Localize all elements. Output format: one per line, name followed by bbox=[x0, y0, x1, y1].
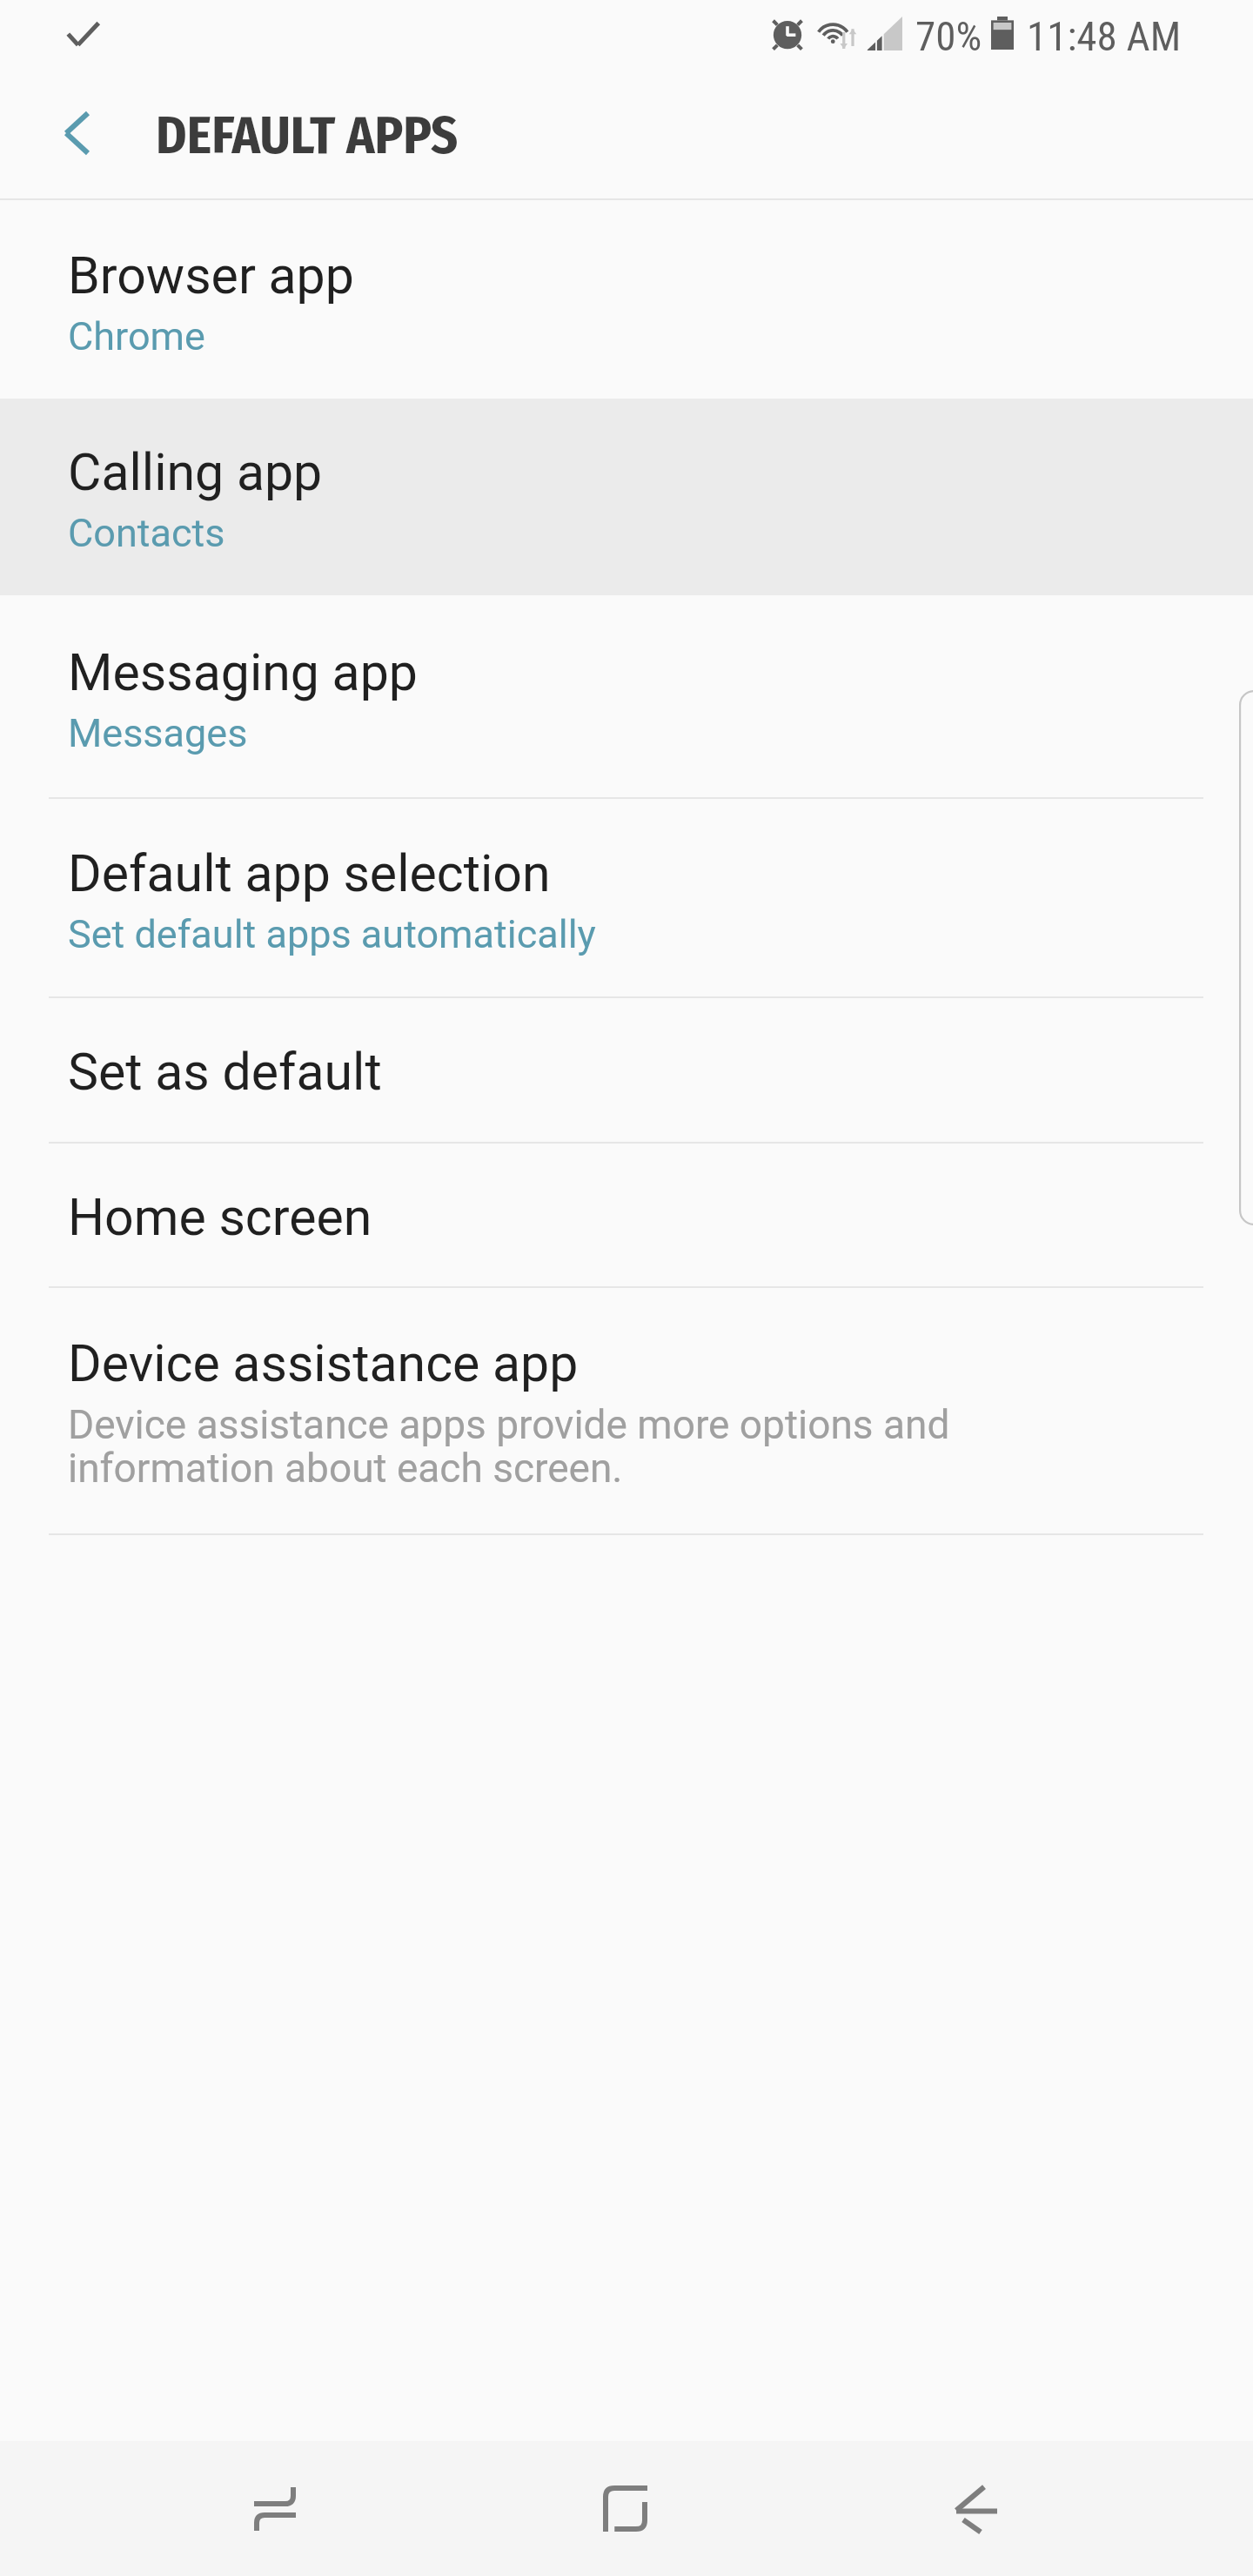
button[interactable]: Device assistance app bbox=[0, 1287, 1253, 1534]
button[interactable]: Default app selection bbox=[0, 799, 1253, 997]
staticText: Default app selection bbox=[68, 843, 551, 903]
button[interactable]: Navigate up bbox=[24, 78, 129, 198]
button[interactable]: Calling app bbox=[0, 399, 1253, 595]
staticText: DEFAULT APPS bbox=[156, 104, 459, 167]
staticText: Set as default bbox=[68, 1042, 382, 1102]
staticText: Messages bbox=[68, 710, 248, 756]
button[interactable]: Messaging app bbox=[0, 595, 1253, 799]
staticText: Messaging app bbox=[68, 642, 418, 702]
staticText: Chrome bbox=[68, 313, 205, 359]
button[interactable]: Recent apps bbox=[136, 2441, 414, 2576]
staticText: Device assistance apps provide more opti… bbox=[68, 1401, 950, 1492]
staticText: 70% bbox=[915, 12, 982, 60]
staticText: 11:48 AM bbox=[1027, 12, 1182, 60]
staticText: Browser app bbox=[68, 245, 354, 305]
button[interactable]: Set as default bbox=[0, 997, 1253, 1143]
staticText: Contacts bbox=[68, 510, 225, 556]
staticText: Calling app bbox=[68, 442, 323, 502]
button[interactable]: Home screen bbox=[0, 1143, 1253, 1287]
button[interactable]: Browser app bbox=[0, 202, 1253, 399]
button[interactable]: Home bbox=[486, 2441, 764, 2576]
button[interactable]: Back bbox=[836, 2441, 1115, 2576]
staticText: Home screen bbox=[68, 1187, 372, 1247]
staticText: Device assistance app bbox=[68, 1333, 579, 1393]
staticText: Set default apps automatically bbox=[68, 911, 596, 957]
